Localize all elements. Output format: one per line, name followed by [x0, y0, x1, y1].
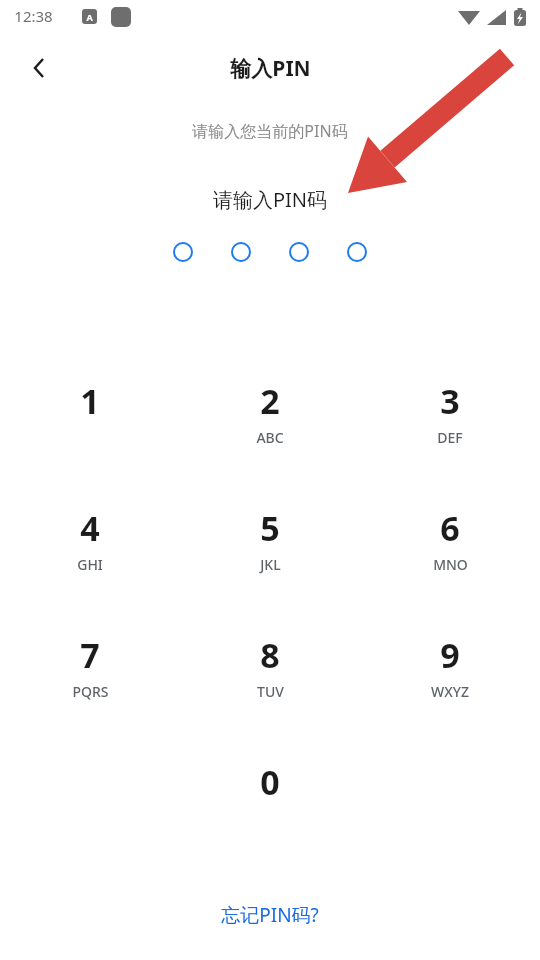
button[interactable]: 7: [0, 632, 180, 732]
staticText: A: [86, 11, 93, 23]
staticText: TUV: [257, 682, 284, 701]
button[interactable]: 1: [0, 378, 180, 478]
button[interactable]: 2: [180, 378, 360, 478]
staticText: 4: [80, 505, 100, 551]
staticText: 请输入PIN码: [0, 186, 540, 213]
button[interactable]: 5: [180, 505, 360, 605]
staticText: 忘记PIN码?: [221, 902, 319, 928]
staticText: MNO: [433, 555, 468, 574]
button[interactable]: 4: [0, 505, 180, 605]
staticText: 0: [260, 759, 280, 805]
staticText: GHI: [77, 555, 103, 574]
staticText: 请输入您当前的PIN码: [0, 120, 540, 142]
button[interactable]: 9: [360, 632, 540, 732]
staticText: 5: [260, 505, 280, 551]
button[interactable]: 8: [180, 632, 360, 732]
button[interactable]: 忘记PIN码?: [0, 898, 540, 932]
staticText: 2: [260, 378, 280, 424]
staticText: 7: [80, 632, 100, 678]
staticText: DEF: [437, 428, 463, 447]
staticText: 8: [260, 632, 280, 678]
button[interactable]: 3: [360, 378, 540, 478]
staticText: ABC: [256, 428, 284, 447]
staticText: 3: [440, 378, 460, 424]
staticText: WXYZ: [431, 682, 469, 701]
staticText: PQRS: [72, 682, 109, 701]
staticText: 输入PIN: [230, 54, 311, 83]
staticText: 6: [440, 505, 460, 551]
staticText: JKL: [260, 555, 281, 574]
button[interactable]: Back: [16, 44, 64, 92]
staticText: 9: [440, 632, 460, 678]
button[interactable]: 6: [360, 505, 540, 605]
staticText: 1: [80, 378, 100, 424]
staticText: 12:38: [14, 6, 53, 26]
button[interactable]: 0: [180, 759, 360, 859]
